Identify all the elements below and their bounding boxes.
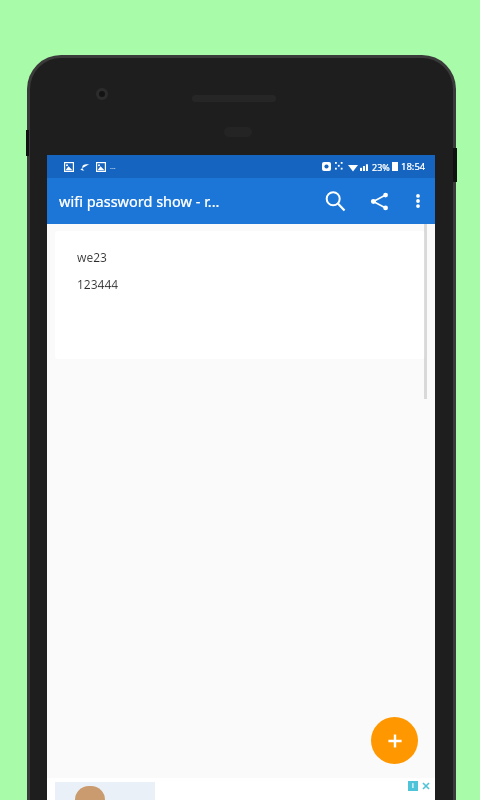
staticText: wifi password show - r... bbox=[59, 191, 259, 211]
staticText: i bbox=[412, 781, 414, 791]
staticText: 23% bbox=[372, 161, 390, 173]
button[interactable]: we23 bbox=[55, 231, 425, 359]
button[interactable]: Share bbox=[357, 179, 401, 223]
staticText: 123444 bbox=[77, 276, 119, 292]
staticText: we23 bbox=[77, 249, 107, 265]
staticText: 18:54 bbox=[401, 160, 426, 173]
button[interactable]: Search bbox=[313, 179, 357, 223]
staticText: ... bbox=[110, 162, 116, 172]
button[interactable]: Add network bbox=[371, 717, 418, 764]
button[interactable]: More options bbox=[401, 184, 435, 218]
